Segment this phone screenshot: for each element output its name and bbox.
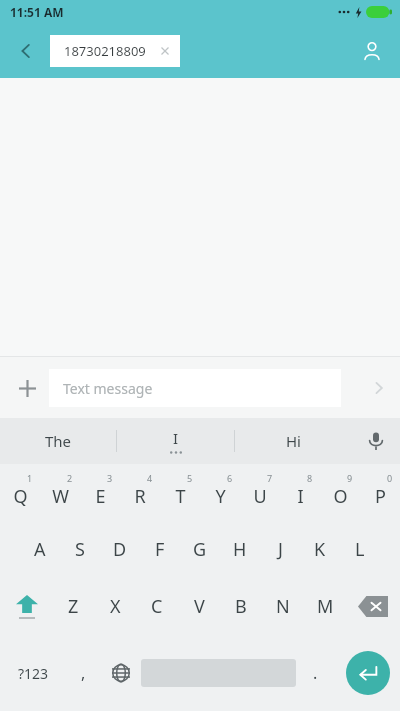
staticText: The [45,431,72,451]
button[interactable]: I [280,464,320,521]
button[interactable]: F [140,521,180,578]
button[interactable]: Send [362,371,396,405]
staticText: P [375,484,386,509]
staticText: W [52,484,69,509]
staticText: N [276,594,290,619]
button[interactable]: O [320,464,360,521]
staticText: 3 [107,472,113,484]
staticText: 18730218809 [64,42,146,60]
staticText: , [81,662,86,684]
staticText: V [194,594,205,619]
button[interactable]: . [296,635,335,711]
button[interactable]: Backspace [346,578,400,635]
button[interactable]: D [100,521,140,578]
staticText: M [317,594,334,619]
staticText: O [333,484,348,509]
staticText: J [278,537,283,562]
staticText: Text message [63,379,153,398]
staticText: Y [215,484,226,509]
button[interactable]: G [180,521,220,578]
other: Clear [160,46,170,56]
button[interactable]: Q [0,464,40,521]
button[interactable]: L [340,521,380,578]
button[interactable]: Text message [49,369,341,407]
button[interactable]: M [304,578,346,635]
button[interactable]: C [136,578,178,635]
button[interactable]: A [20,521,60,578]
staticText: C [151,594,163,619]
staticText: 11:51 AM [10,4,64,20]
staticText: 6 [227,472,233,484]
staticText: G [193,537,207,562]
button[interactable]: Contact [352,31,392,71]
button[interactable]: Change language [100,635,141,711]
button[interactable]: Attach [8,369,46,407]
staticText: H [233,537,247,562]
staticText: D [113,537,127,562]
button[interactable]: S [60,521,100,578]
button[interactable]: U [240,464,280,521]
button[interactable]: Shift [0,578,53,635]
button[interactable]: N [262,578,304,635]
staticText: F [155,537,165,562]
staticText: U [253,484,267,509]
button[interactable]: 18730218809 [50,35,180,67]
staticText: A [34,537,46,562]
button[interactable]: J [260,521,300,578]
staticText: Hi [286,431,301,451]
staticText: I [297,484,304,509]
staticText: K [314,537,326,562]
button[interactable]: B [220,578,262,635]
button[interactable]: X [94,578,136,635]
button[interactable]: The [0,418,116,464]
button[interactable]: T [160,464,200,521]
staticText: 5 [187,472,193,484]
staticText: 9 [347,472,353,484]
staticText: E [95,484,106,509]
button[interactable]: Back [8,33,44,69]
staticText: 4 [147,472,153,484]
button[interactable]: Z [53,578,94,635]
button[interactable]: Space [141,635,296,711]
staticText: B [235,594,247,619]
staticText: L [355,537,365,562]
button[interactable]: Y [200,464,240,521]
staticText: X [110,594,121,619]
button[interactable]: H [220,521,260,578]
button[interactable]: , [66,635,100,711]
staticText: S [75,537,85,562]
staticText: 1 [27,472,33,484]
staticText: 2 [67,472,73,484]
staticText: . [313,662,318,684]
button[interactable]: Hi [235,418,352,464]
button[interactable]: K [300,521,340,578]
button[interactable]: V [178,578,220,635]
button[interactable]: R [120,464,160,521]
staticText: Z [68,594,79,619]
staticText: T [175,484,186,509]
staticText: 8 [307,472,313,484]
staticText: R [134,484,146,509]
button[interactable]: Voice input [352,418,400,464]
button[interactable]: ?123 [0,635,66,711]
staticText: 0 [387,472,393,484]
staticText: I [173,428,179,448]
staticText: Q [13,484,28,509]
button[interactable]: Enter [335,635,400,711]
button[interactable]: W [40,464,80,521]
staticText: ?123 [18,664,49,683]
button[interactable]: P [360,464,400,521]
button[interactable]: E [80,464,120,521]
staticText: 7 [267,472,273,484]
